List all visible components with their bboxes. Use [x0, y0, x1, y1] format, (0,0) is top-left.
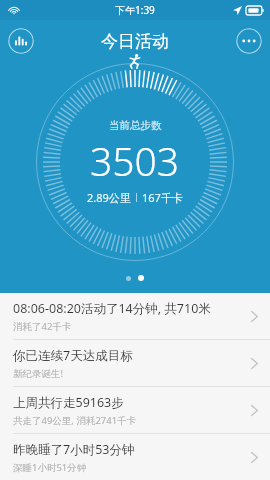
button[interactable]: 08:06-08:20活动了14分钟, 共710米	[0, 293, 270, 339]
staticText: 上周共行走59163步	[13, 394, 124, 411]
staticText: 新纪录诞生!	[13, 367, 64, 380]
staticText: 共走了49公里, 消耗2741千卡	[13, 414, 137, 427]
staticText: 你已连续7天达成目标	[13, 347, 133, 364]
staticText: 当前总步数	[109, 119, 162, 132]
staticText: 今日活动	[101, 31, 169, 52]
staticText: 昨晚睡了7小时53分钟	[13, 441, 135, 458]
staticText: 消耗了42千卡	[13, 320, 72, 333]
staticText: 167千卡	[142, 190, 183, 205]
button[interactable]: 昨晚睡了7小时53分钟	[0, 434, 270, 480]
staticText: 下午1:39	[115, 3, 155, 17]
button[interactable]: 你已连续7天达成目标	[0, 340, 270, 386]
staticText: 深睡1小时51分钟	[13, 461, 87, 474]
staticText: 3503	[90, 134, 180, 187]
staticText: 08:06-08:20活动了14分钟, 共710米	[13, 300, 211, 317]
button[interactable]: More options	[236, 28, 262, 54]
button[interactable]: Statistics	[8, 28, 34, 54]
button[interactable]: 上周共行走59163步	[0, 387, 270, 433]
staticText: 2.89公里	[87, 190, 131, 205]
